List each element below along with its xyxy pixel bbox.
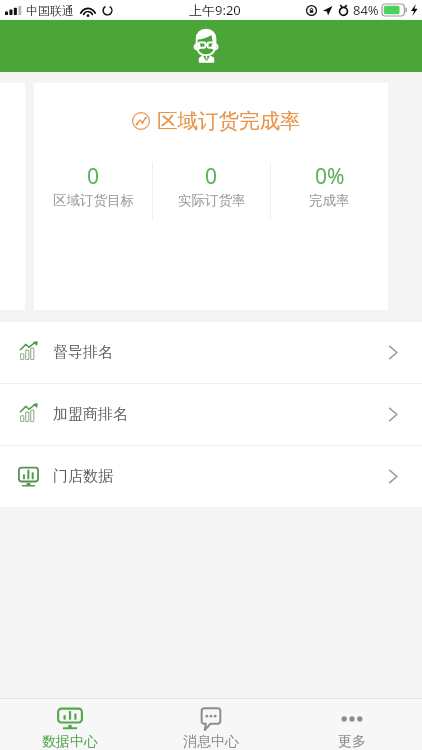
staticText: 中国联通	[26, 3, 74, 18]
staticText: 0%	[315, 162, 345, 191]
button[interactable]: 门店数据	[0, 446, 422, 507]
button[interactable]: 消息中心	[140, 699, 281, 750]
staticText: 实际订货率	[178, 192, 246, 209]
button[interactable]: 督导排名	[0, 322, 422, 383]
staticText: 更多	[338, 733, 366, 750]
staticText: 0	[87, 162, 100, 191]
button[interactable]: 加盟商排名	[0, 384, 422, 445]
staticText: 区域订货完成率	[157, 108, 301, 134]
button[interactable]: 数据中心	[0, 699, 140, 750]
staticText: 加盟商排名	[53, 405, 128, 424]
staticText: 0	[205, 162, 218, 191]
staticText: 上午9:20	[189, 1, 241, 19]
staticText: 84%	[353, 1, 379, 19]
button[interactable]: 更多	[281, 699, 422, 750]
staticText: 消息中心	[183, 733, 239, 750]
staticText: 数据中心	[42, 733, 98, 750]
staticText: 完成率	[309, 192, 350, 209]
staticText: 督导排名	[53, 343, 113, 362]
staticText: 区域订货目标	[53, 192, 134, 209]
button[interactable]: Profile	[184, 24, 228, 68]
staticText: 门店数据	[53, 467, 113, 486]
